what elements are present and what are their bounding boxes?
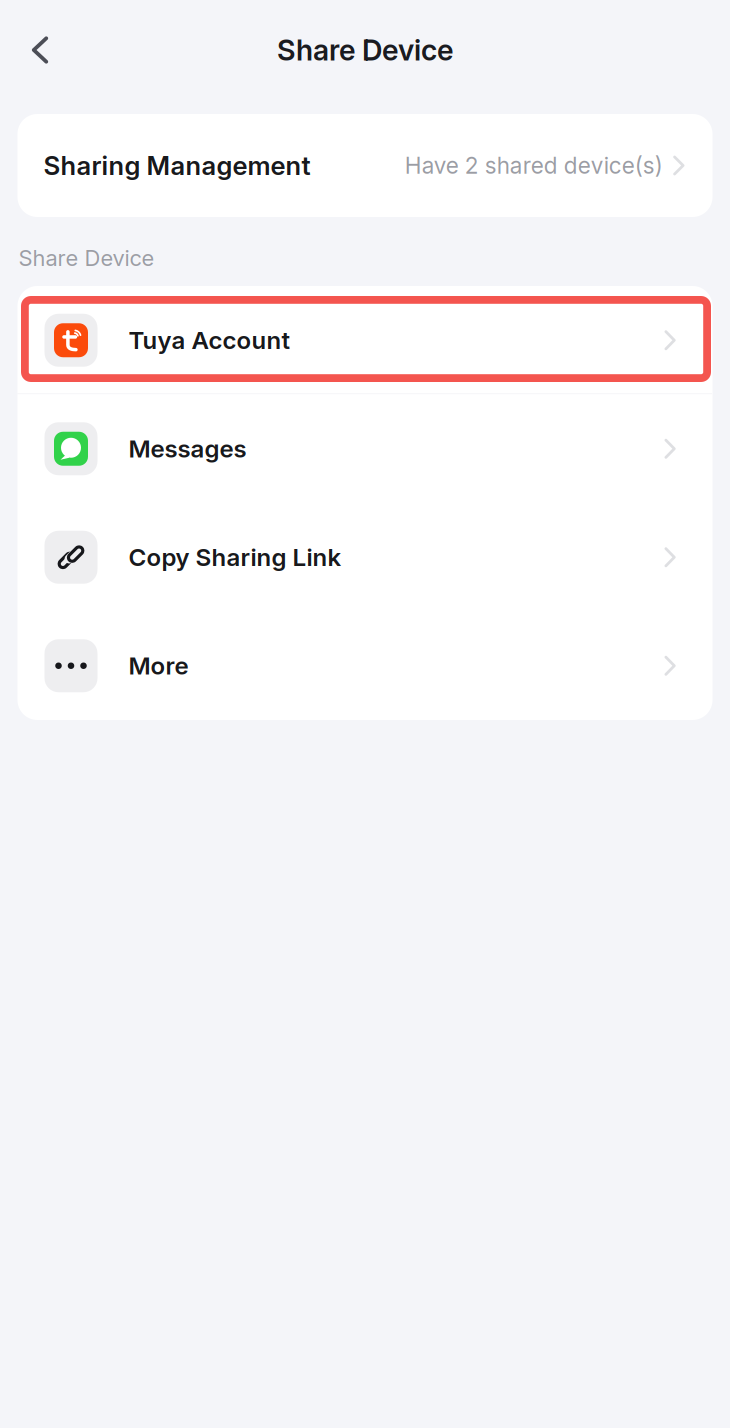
button[interactable]: More — [17, 611, 712, 720]
button[interactable]: Messages — [17, 394, 712, 503]
staticText: Messages — [128, 434, 246, 463]
staticText: Sharing Management — [43, 150, 310, 181]
button[interactable]: Sharing Management — [17, 114, 712, 217]
staticText: Share Device — [18, 245, 154, 271]
staticText: Tuya Account — [128, 326, 290, 355]
staticText: Share Device — [277, 33, 453, 67]
staticText: More — [128, 651, 188, 680]
staticText: Have 2 shared device(s) — [405, 152, 663, 179]
staticText: Copy Sharing Link — [128, 543, 341, 572]
button[interactable]: Copy Sharing Link — [17, 503, 712, 611]
button[interactable]: Tuya Account — [17, 286, 712, 394]
button[interactable]: Back — [8, 18, 72, 82]
